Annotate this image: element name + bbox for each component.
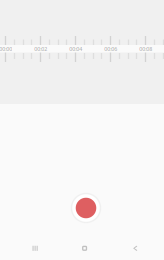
staticText: 00:06	[104, 45, 117, 52]
staticText: 00:02	[34, 45, 47, 52]
staticText: 00:00	[0, 45, 12, 52]
staticText: 00:04	[69, 45, 82, 52]
button[interactable]: Back	[115, 235, 155, 260]
button[interactable]: Record	[68, 190, 104, 226]
button[interactable]: Home	[65, 235, 105, 260]
button[interactable]: Recent apps	[15, 235, 55, 260]
staticText: 00:08	[139, 45, 152, 52]
